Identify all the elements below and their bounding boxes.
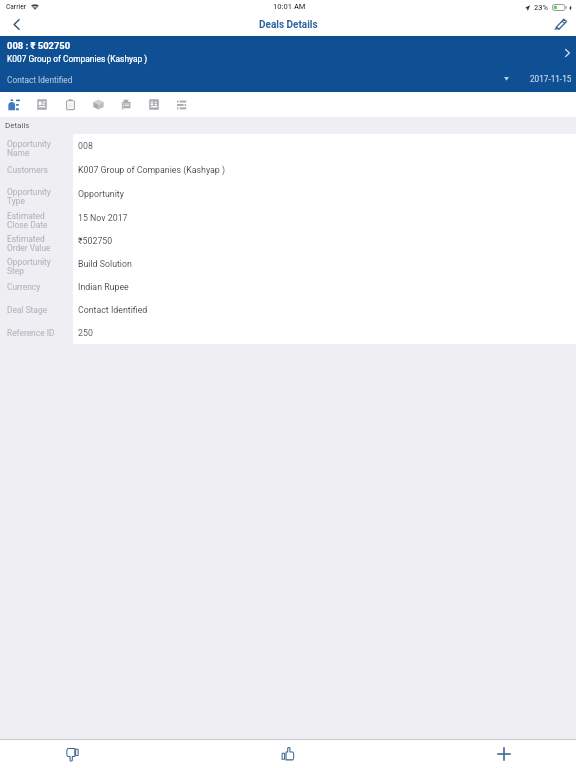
staticText: Name (7, 148, 30, 158)
staticText: Contact Identified (7, 75, 73, 85)
staticText: K007 Group of Companies (Kashyap ) (7, 54, 148, 64)
staticText: Step (7, 266, 24, 276)
staticText: Opportunity (78, 189, 124, 199)
staticText: 15 Nov 2017 (78, 213, 128, 223)
staticText: Opportunity (7, 187, 51, 197)
button[interactable]: Deal (0, 92, 28, 117)
staticText: Deal Stage (7, 305, 48, 315)
button[interactable]: Add (432, 740, 576, 768)
button[interactable]: Products (84, 92, 112, 117)
button[interactable]: Back (0, 14, 32, 36)
staticText: 10:01 AM (273, 2, 306, 11)
staticText: Type (7, 196, 25, 206)
button[interactable]: Tasks (56, 92, 84, 117)
staticText: Customers (7, 165, 48, 175)
staticText: Details (5, 121, 30, 130)
staticText: Indian Rupee (78, 282, 129, 292)
button[interactable]: Documents (112, 92, 140, 117)
staticText: Opportunity (7, 257, 51, 267)
button[interactable]: Edit (544, 14, 576, 36)
button[interactable]: Notes (140, 92, 168, 117)
staticText: 250 (78, 328, 93, 338)
staticText: 008 (78, 141, 93, 151)
button[interactable]: Contact Identified (0, 68, 576, 92)
button[interactable]: Like (144, 740, 432, 768)
staticText: Carrier (6, 3, 27, 11)
staticText: Contact Identified (78, 305, 148, 315)
staticText: Estimated (7, 211, 45, 221)
staticText: Estimated (7, 234, 45, 244)
staticText: Close Date (7, 220, 48, 230)
button[interactable]: Dislike (0, 740, 144, 768)
staticText: 2017-11-15 (530, 74, 572, 84)
button[interactable]: 008 : ₹ 502750 (0, 36, 576, 68)
staticText: Deals Details (259, 19, 318, 31)
staticText: Reference ID (7, 328, 55, 338)
staticText: Opportunity (7, 139, 51, 149)
staticText: Build Solution (78, 259, 132, 269)
staticText: 008 : ₹ 502750 (7, 40, 71, 51)
staticText: Order Value (7, 243, 51, 253)
button[interactable]: Contacts (28, 92, 56, 117)
button[interactable]: Activities (168, 92, 196, 117)
staticText: Currency (7, 282, 41, 292)
staticText: ₹502750 (78, 236, 113, 246)
staticText: 23% (534, 3, 549, 12)
staticText: K007 Group of Companies (Kashyap ) (78, 165, 225, 175)
